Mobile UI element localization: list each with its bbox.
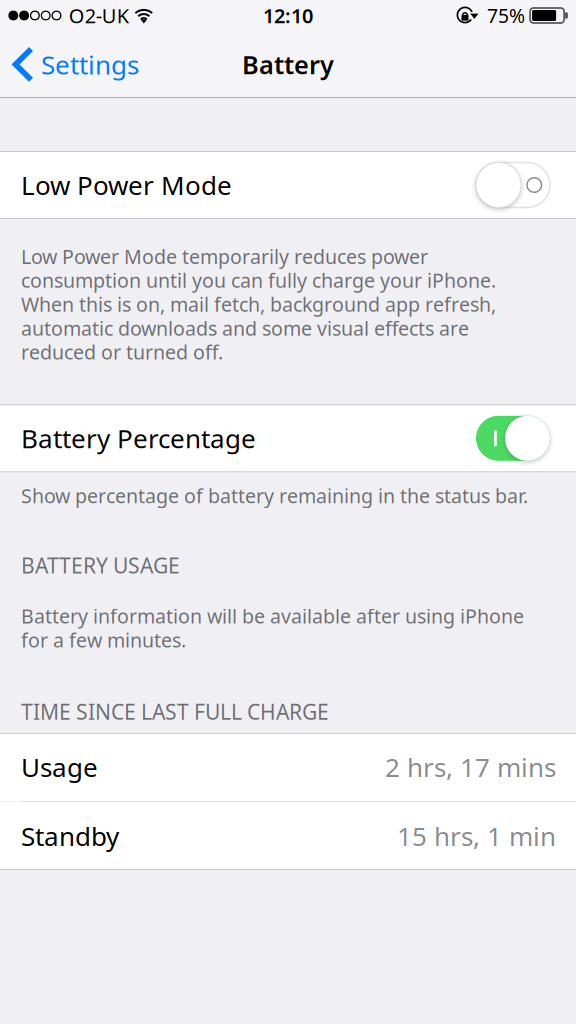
staticText: O2-UK (69, 2, 129, 29)
button[interactable]: Battery Percentage (0, 404, 576, 472)
staticText: 75% (487, 2, 525, 29)
button[interactable]: Standby (0, 802, 576, 870)
staticText: BATTERY USAGE (21, 551, 180, 580)
staticText: Battery information will be available af… (21, 603, 524, 653)
button[interactable]: Low Power Mode (0, 151, 576, 219)
staticText: Battery (242, 47, 334, 82)
staticText: TIME SINCE LAST FULL CHARGE (21, 697, 329, 726)
staticText: Low Power Mode temporarily reduces power… (21, 243, 496, 365)
staticText: 12:10 (263, 2, 313, 29)
staticText: Low Power Mode (21, 167, 232, 203)
staticText: 2 hrs, 17 mins (385, 749, 556, 785)
staticText: Show percentage of battery remaining in … (21, 482, 528, 509)
staticText: Usage (21, 749, 98, 785)
staticText: Settings (41, 47, 139, 82)
staticText: 15 hrs, 1 min (397, 818, 556, 854)
button[interactable]: Usage (0, 733, 576, 801)
staticText: Battery Percentage (21, 421, 256, 456)
button[interactable]: Settings (0, 38, 149, 91)
staticText: Standby (21, 818, 119, 854)
